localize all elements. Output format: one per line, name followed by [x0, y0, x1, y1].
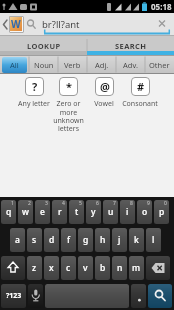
staticText: x [49, 262, 54, 274]
button[interactable]: a [10, 228, 25, 252]
button[interactable]: W [9, 16, 24, 33]
staticText: o [142, 206, 148, 218]
button[interactable]: # [131, 77, 150, 96]
staticText: # [137, 79, 145, 94]
button[interactable]: y [86, 200, 101, 224]
button[interactable] [148, 284, 172, 308]
button[interactable]: x [44, 256, 59, 280]
button[interactable]: Adj. [87, 55, 116, 74]
button[interactable]: f [61, 228, 76, 252]
button[interactable]: h [95, 228, 110, 252]
staticText: d [49, 234, 55, 246]
staticText: j [118, 234, 121, 246]
button[interactable]: p [154, 200, 169, 224]
staticText: Any letter [18, 99, 50, 109]
staticText: b [100, 262, 106, 274]
staticText: ?123 [6, 291, 22, 301]
staticText: Adj. [95, 60, 109, 70]
button[interactable]: Noun [29, 55, 58, 74]
staticText: W [11, 17, 21, 31]
button[interactable]: o [137, 200, 152, 224]
staticText: 7 [113, 200, 116, 207]
button[interactable]: d [44, 228, 59, 252]
staticText: 3 [45, 200, 48, 207]
button[interactable] [45, 284, 129, 308]
staticText: y [91, 206, 96, 218]
button[interactable]: z [27, 256, 42, 280]
button[interactable]: q [1, 200, 16, 224]
staticText: 6 [96, 200, 99, 207]
staticText: a [15, 234, 20, 246]
button[interactable]: m [129, 256, 144, 280]
staticText: Consonant [122, 99, 158, 109]
staticText: Zero or more unknown letters [51, 99, 86, 133]
staticText: 0 [164, 200, 167, 207]
button[interactable]: n [112, 256, 127, 280]
button[interactable] [28, 284, 43, 308]
staticText: q [6, 206, 12, 218]
staticText: m [132, 262, 141, 274]
button[interactable]: s [27, 228, 42, 252]
staticText: SEARCH [115, 41, 147, 51]
staticText: Other [149, 60, 170, 70]
staticText: Adv. [123, 60, 138, 70]
staticText: s [32, 234, 37, 246]
staticText: ? [32, 79, 38, 94]
staticText: p [159, 206, 165, 218]
button[interactable]: l [146, 228, 161, 252]
button[interactable]: LOOKUP [0, 36, 87, 55]
staticText: i [126, 206, 129, 218]
button[interactable]: Other [145, 55, 174, 74]
staticText: f [67, 234, 71, 246]
staticText: All [10, 60, 19, 70]
staticText: LOOKUP [27, 41, 61, 51]
staticText: l [152, 234, 155, 246]
staticText: c [66, 262, 71, 274]
staticText: e [40, 206, 45, 218]
staticText: z [32, 262, 37, 274]
staticText: 05:18 [151, 1, 172, 12]
staticText: Verb [64, 60, 81, 70]
button[interactable]: r [52, 200, 67, 224]
staticText: 2 [28, 200, 31, 207]
button[interactable] [1, 256, 25, 280]
button[interactable]: ? [25, 77, 44, 96]
button[interactable]: Verb [58, 55, 87, 74]
staticText: * [66, 79, 72, 94]
button[interactable]: * [59, 77, 78, 96]
staticText: @ [100, 79, 110, 94]
staticText: g [83, 234, 89, 246]
button[interactable]: c [61, 256, 76, 280]
staticText: t [75, 206, 79, 218]
staticText: Noun [34, 60, 54, 70]
button[interactable] [146, 256, 170, 280]
button[interactable]: @ [95, 77, 114, 96]
staticText: u [108, 206, 114, 218]
button[interactable]: ?123 [1, 284, 26, 308]
staticText: w [22, 206, 29, 218]
button[interactable]: i [120, 200, 135, 224]
button[interactable]: t [69, 200, 84, 224]
button[interactable]: v [78, 256, 93, 280]
staticText: 1 [11, 200, 14, 207]
button[interactable]: b [95, 256, 110, 280]
staticText: n [117, 262, 123, 274]
staticText: v [83, 262, 88, 274]
staticText: 5 [79, 200, 82, 207]
staticText: 9 [147, 200, 150, 207]
button[interactable]: e [35, 200, 50, 224]
staticText: r [58, 206, 62, 218]
staticText: k [134, 234, 139, 246]
button[interactable]: j [112, 228, 127, 252]
button[interactable]: All [0, 55, 29, 74]
button[interactable]: g [78, 228, 93, 252]
button[interactable]: w [18, 200, 33, 224]
button[interactable]: Adv. [116, 55, 145, 74]
button[interactable]: u [103, 200, 118, 224]
staticText: 8 [130, 200, 133, 207]
button[interactable] [131, 284, 146, 308]
button[interactable]: k [129, 228, 144, 252]
staticText: h [100, 234, 106, 246]
button[interactable]: br?ll?ant [42, 18, 80, 31]
button[interactable]: SEARCH [87, 36, 174, 55]
